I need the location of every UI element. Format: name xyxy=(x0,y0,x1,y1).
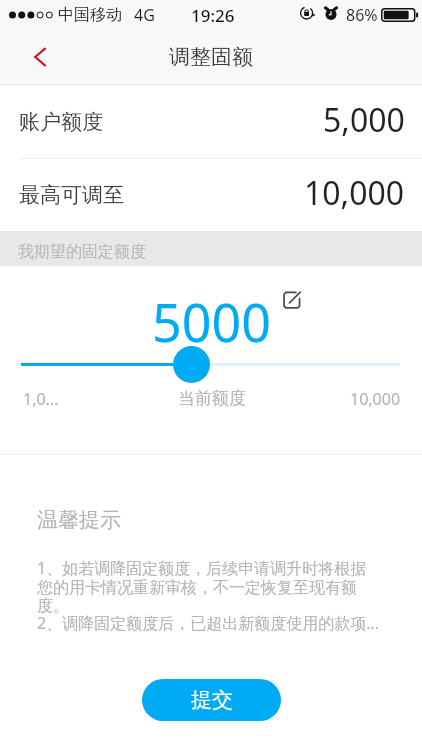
staticText: 86% xyxy=(346,4,378,26)
staticText: 19:26 xyxy=(191,4,235,27)
staticText: 1,0... xyxy=(23,388,59,410)
button[interactable]: Edit amount xyxy=(283,291,301,309)
staticText: 当前额度 xyxy=(178,388,246,409)
staticText: 5000 xyxy=(152,286,271,357)
staticText: 我期望的固定额度 xyxy=(18,242,146,262)
staticText: 4G xyxy=(134,4,155,26)
staticText: 5,000 xyxy=(323,98,405,142)
staticText: 温馨提示 xyxy=(37,507,121,533)
staticText: 最高可调至 xyxy=(19,182,124,208)
staticText: 调整固额 xyxy=(169,44,253,70)
staticText: 提交 xyxy=(191,687,233,713)
staticText: 10,000 xyxy=(350,388,401,410)
button[interactable]: Back xyxy=(0,30,62,84)
staticText: 中国移动 xyxy=(58,5,122,25)
button[interactable]: 最高可调至 xyxy=(0,158,422,231)
button[interactable]: 提交 xyxy=(142,679,281,721)
button[interactable]: Credit limit slider xyxy=(21,345,400,385)
staticText: 1、如若调降固定额度，后续申请调升时将根据 您的用卡情况重新审核，不一定恢复至现… xyxy=(37,557,380,634)
staticText: 账户额度 xyxy=(19,109,103,135)
button[interactable]: 账户额度 xyxy=(0,85,422,158)
staticText: 10,000 xyxy=(304,171,405,215)
